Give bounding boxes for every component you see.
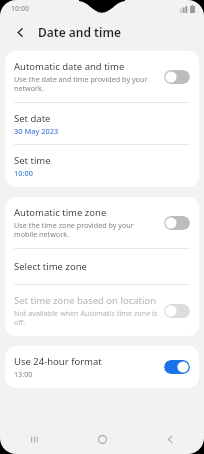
button[interactable]: Automatic date and time (5, 51, 199, 102)
staticText: Set date (14, 112, 51, 125)
staticText: Set time zone based on location (14, 294, 157, 307)
staticText: 10:00 (14, 168, 33, 178)
button[interactable]: Select time zone (5, 249, 199, 284)
staticText: 30 May 2023 (14, 126, 59, 136)
staticText: Not available when Automatic time zone i… (14, 308, 158, 327)
button[interactable]: Back (136, 424, 204, 454)
button[interactable]: Set time (5, 145, 199, 187)
staticText: 10:00 (11, 4, 29, 14)
button[interactable]: Home (68, 424, 136, 454)
staticText: Use the date and time provided by your n… (14, 74, 158, 93)
button[interactable]: Back (10, 22, 30, 42)
button[interactable]: Off (164, 304, 190, 318)
button[interactable]: On (164, 360, 190, 374)
button[interactable]: Automatic time zone (5, 197, 199, 248)
button[interactable]: Set date (5, 103, 199, 144)
staticText: Set time (14, 154, 51, 167)
button[interactable]: Recents (0, 424, 68, 454)
staticText: Date and time (38, 24, 121, 40)
staticText: Automatic date and time (14, 60, 125, 73)
button[interactable]: Off (164, 70, 190, 84)
button[interactable]: Set time zone based on location (5, 285, 199, 336)
staticText: Select time zone (14, 260, 87, 273)
button[interactable]: Off (164, 216, 190, 230)
button[interactable]: Use 24-hour format (5, 346, 199, 388)
staticText: Use the time zone provided by your mobil… (14, 220, 158, 239)
staticText: Automatic time zone (14, 206, 107, 219)
staticText: 13:00 (14, 369, 33, 379)
staticText: Use 24-hour format (14, 355, 102, 368)
